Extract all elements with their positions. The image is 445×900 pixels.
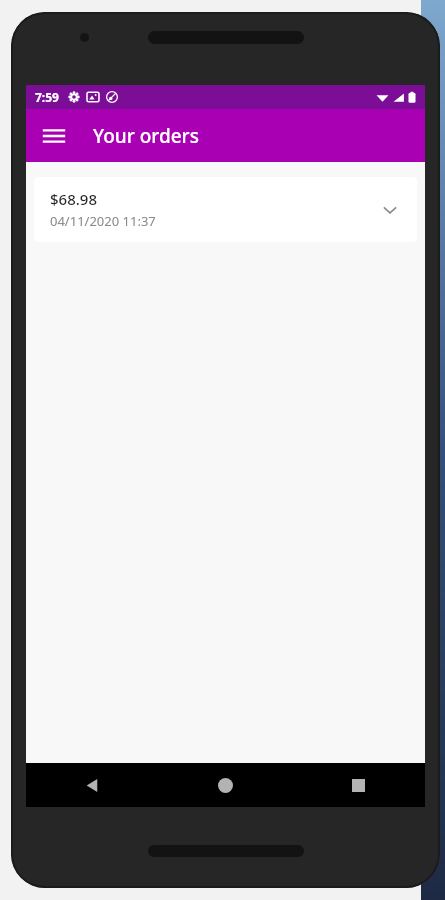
button[interactable]: Expand order details (373, 193, 407, 227)
button[interactable]: $68.98 (34, 177, 417, 242)
button[interactable]: Recent apps (292, 763, 425, 807)
staticText: $68.98 (50, 189, 97, 209)
staticText: 04/11/2020 11:37 (50, 212, 156, 230)
staticText: 7:59 (35, 89, 59, 105)
staticText: Your orders (93, 123, 199, 149)
button[interactable]: Open navigation menu (32, 114, 76, 158)
button[interactable]: Back (26, 763, 159, 807)
button[interactable]: Home (159, 763, 292, 807)
